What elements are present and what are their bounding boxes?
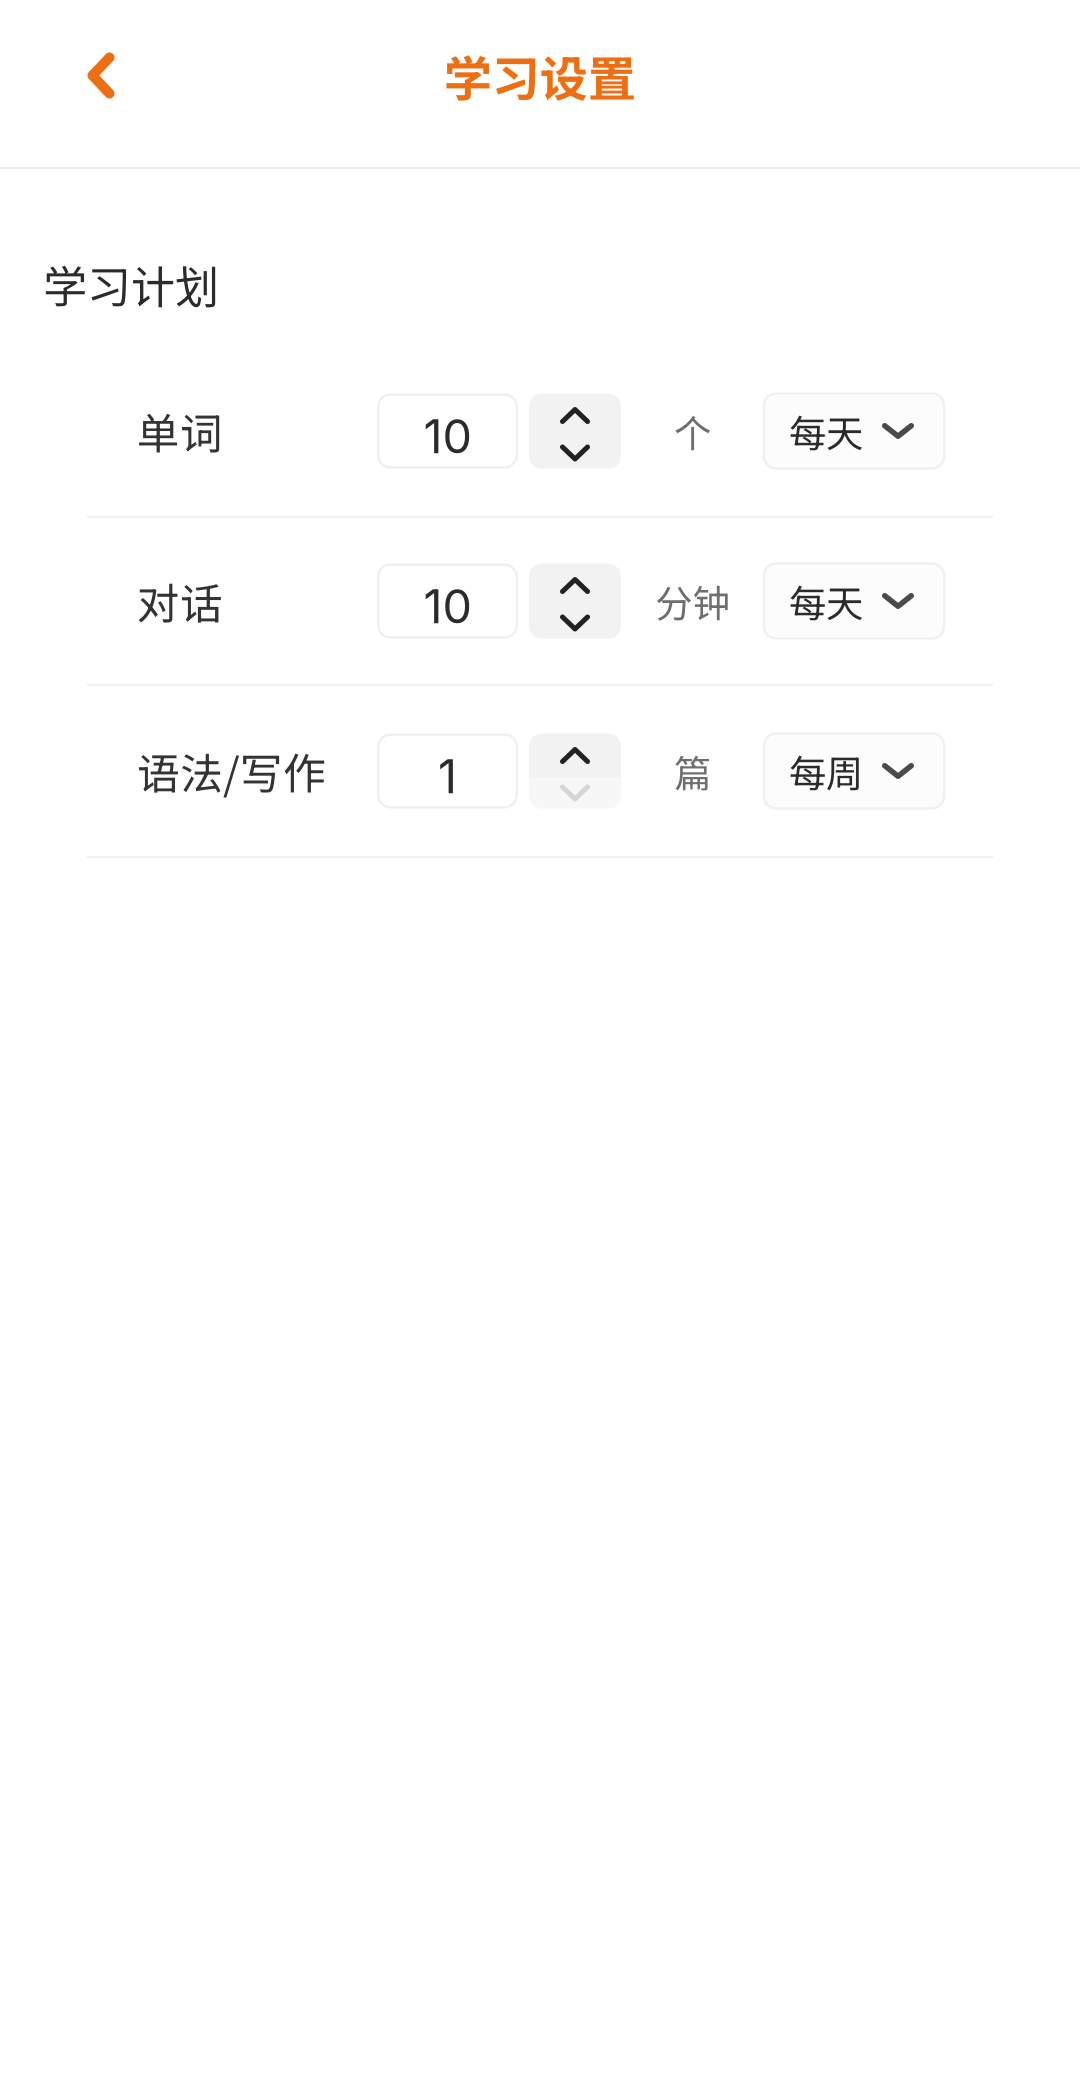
button[interactable]: Adjust 单词: [529, 393, 621, 468]
button[interactable]: Adjust 语法/写作: [529, 733, 621, 808]
staticText: 分钟: [655, 574, 729, 628]
staticText: 1: [438, 748, 457, 804]
staticText: 10: [423, 578, 471, 634]
staticText: 每天: [789, 404, 863, 458]
button[interactable]: 每天: [764, 563, 944, 638]
staticText: 学习设置: [444, 41, 636, 110]
staticText: 单词: [137, 400, 223, 462]
staticText: 10: [423, 408, 471, 464]
staticText: 每天: [789, 574, 863, 628]
staticText: 语法/写作: [137, 740, 326, 802]
staticText: 篇: [674, 744, 711, 798]
staticText: 个: [674, 404, 711, 458]
button[interactable]: 每周: [764, 733, 944, 808]
staticText: 对话: [137, 570, 223, 632]
staticText: 每周: [789, 744, 863, 798]
button[interactable]: Adjust 对话: [529, 563, 621, 638]
button[interactable]: 每天: [764, 393, 944, 468]
staticText: 学习计划: [43, 252, 219, 316]
button[interactable]: Back: [53, 27, 149, 123]
